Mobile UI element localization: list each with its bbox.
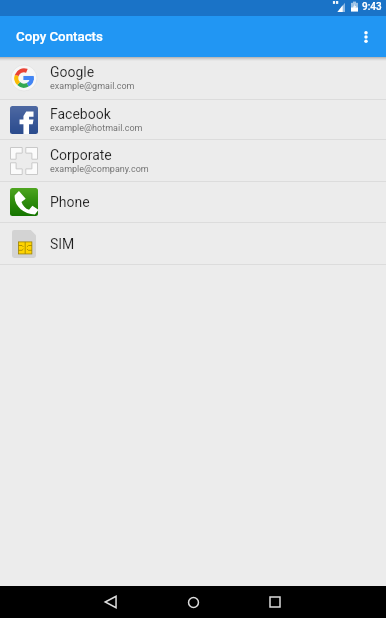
staticText: example@company.com [50, 164, 149, 175]
staticText: SIM [50, 236, 75, 252]
staticText: Facebook [50, 106, 111, 122]
button[interactable]: Recents [234, 586, 316, 618]
button[interactable]: SIM [0, 223, 386, 264]
button[interactable]: Home [152, 586, 234, 618]
button[interactable]: More options [345, 16, 386, 57]
button[interactable]: Google [0, 57, 386, 99]
staticText: 9:43 [362, 1, 382, 13]
staticText: Google [50, 64, 95, 80]
staticText: example@gmail.com [50, 81, 135, 92]
button[interactable]: Corporate [0, 140, 386, 181]
button[interactable]: Back [70, 586, 152, 618]
button[interactable]: Facebook [0, 100, 386, 139]
staticText: Phone [50, 194, 90, 210]
staticText: Copy Contacts [16, 29, 103, 45]
button[interactable]: Phone [0, 182, 386, 222]
staticText: example@hotmail.com [50, 123, 143, 134]
staticText: Corporate [50, 147, 112, 163]
